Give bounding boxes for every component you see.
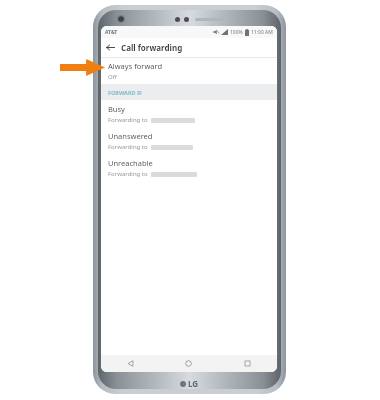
staticText: LG [188,378,199,389]
staticText: Busy [108,104,125,114]
staticText: Unreachable [108,158,153,168]
button[interactable]: Unreachable [101,154,277,181]
staticText: Unanswered [108,131,153,141]
staticText: Always forward [108,61,163,71]
staticText: Forwarding to [108,170,148,178]
button[interactable]: Unanswered [101,127,277,154]
button[interactable]: Back [101,355,159,372]
staticText: 11:00 AM [251,29,273,36]
staticText: FORWARD IF [108,89,143,96]
staticText: Forwarding to [108,116,148,124]
button[interactable]: Recent apps [218,355,277,372]
staticText: Forwarding to [108,143,148,151]
staticText: Off [108,73,117,81]
staticText: AT&T [105,29,118,36]
button[interactable]: Home [159,355,218,372]
button[interactable]: Busy [101,100,277,127]
button[interactable]: Always forward [101,58,277,84]
staticText: Call forwarding [121,42,183,53]
staticText: 100% [230,29,243,36]
button[interactable]: Navigate up [101,38,120,57]
